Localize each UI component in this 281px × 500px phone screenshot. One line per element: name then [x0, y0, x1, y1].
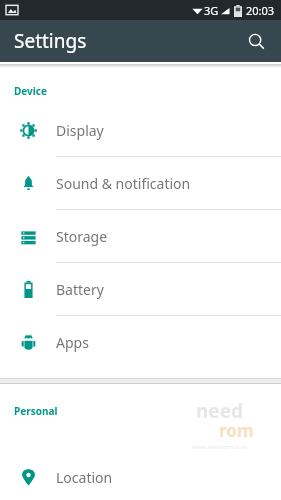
staticText: Storage — [56, 227, 108, 246]
button[interactable]: Storage — [0, 210, 281, 263]
button[interactable]: Display — [0, 104, 281, 157]
staticText: Device — [14, 84, 47, 98]
staticText: 20:03 — [246, 3, 275, 18]
staticText: Settings — [14, 28, 87, 54]
button[interactable]: Battery — [0, 263, 281, 316]
staticText: Personal — [14, 404, 58, 418]
staticText: rom — [219, 419, 254, 442]
staticText: Battery — [56, 280, 104, 299]
button[interactable]: Location — [0, 455, 281, 500]
staticText: Apps — [56, 333, 89, 352]
staticText: Location — [56, 468, 113, 487]
staticText: Display — [56, 121, 104, 140]
button[interactable]: Search — [239, 24, 273, 58]
staticText: Sound & notification — [56, 174, 191, 193]
button[interactable]: Sound & notification — [0, 157, 281, 210]
staticText: need — [196, 398, 244, 424]
staticText: 3G — [204, 3, 219, 18]
button[interactable]: Apps — [0, 316, 281, 368]
staticText: www.needrom.com — [192, 443, 248, 451]
